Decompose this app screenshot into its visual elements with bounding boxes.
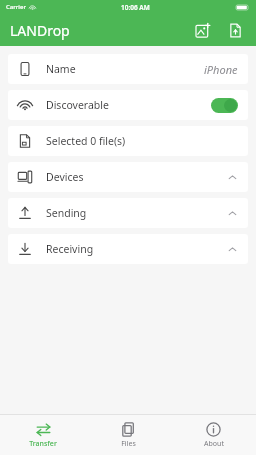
staticText: Carrier: [6, 3, 26, 11]
button[interactable]: Name: [8, 54, 248, 84]
staticText: Files: [121, 439, 136, 449]
staticText: 10:06 AM: [121, 3, 150, 12]
staticText: Devices: [46, 170, 84, 184]
staticText: iPhone: [204, 62, 238, 77]
button[interactable]: Devices: [8, 162, 248, 192]
button[interactable]: Add file: [222, 17, 248, 43]
button[interactable]: Discoverable toggle: [211, 98, 238, 113]
staticText: Transfer: [29, 439, 57, 449]
button[interactable]: Add image: [190, 17, 216, 43]
button[interactable]: Discoverable: [8, 90, 248, 120]
staticText: Receiving: [46, 242, 94, 256]
button[interactable]: Transfer: [0, 415, 86, 455]
button[interactable]: Sending: [8, 198, 248, 228]
staticText: Name: [46, 62, 76, 76]
staticText: Sending: [46, 206, 87, 220]
staticText: LANDrop: [10, 21, 70, 40]
staticText: Discoverable: [46, 98, 109, 112]
staticText: About: [204, 439, 224, 449]
button[interactable]: Selected 0 file(s): [8, 126, 248, 156]
button[interactable]: About: [171, 415, 256, 455]
button[interactable]: Receiving: [8, 234, 248, 264]
button[interactable]: Files: [86, 415, 171, 455]
staticText: Selected 0 file(s): [46, 134, 126, 148]
